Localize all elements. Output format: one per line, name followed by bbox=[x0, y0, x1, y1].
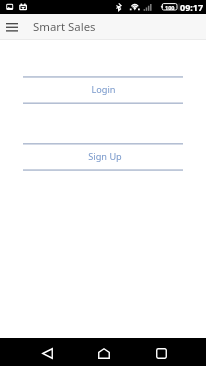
button[interactable]: Open navigation menu bbox=[0, 14, 23, 40]
button[interactable]: Home bbox=[93, 342, 115, 364]
button[interactable]: Back bbox=[36, 342, 58, 364]
staticText: 100 bbox=[165, 4, 175, 11]
button[interactable]: Login bbox=[23, 76, 183, 103]
staticText: Login bbox=[91, 83, 116, 96]
button[interactable]: Recent apps bbox=[150, 342, 172, 364]
staticText: 09:17 bbox=[180, 1, 204, 13]
button[interactable]: Sign Up bbox=[23, 143, 183, 170]
staticText: Smart Sales bbox=[33, 19, 96, 35]
staticText: Sign Up bbox=[88, 150, 122, 163]
